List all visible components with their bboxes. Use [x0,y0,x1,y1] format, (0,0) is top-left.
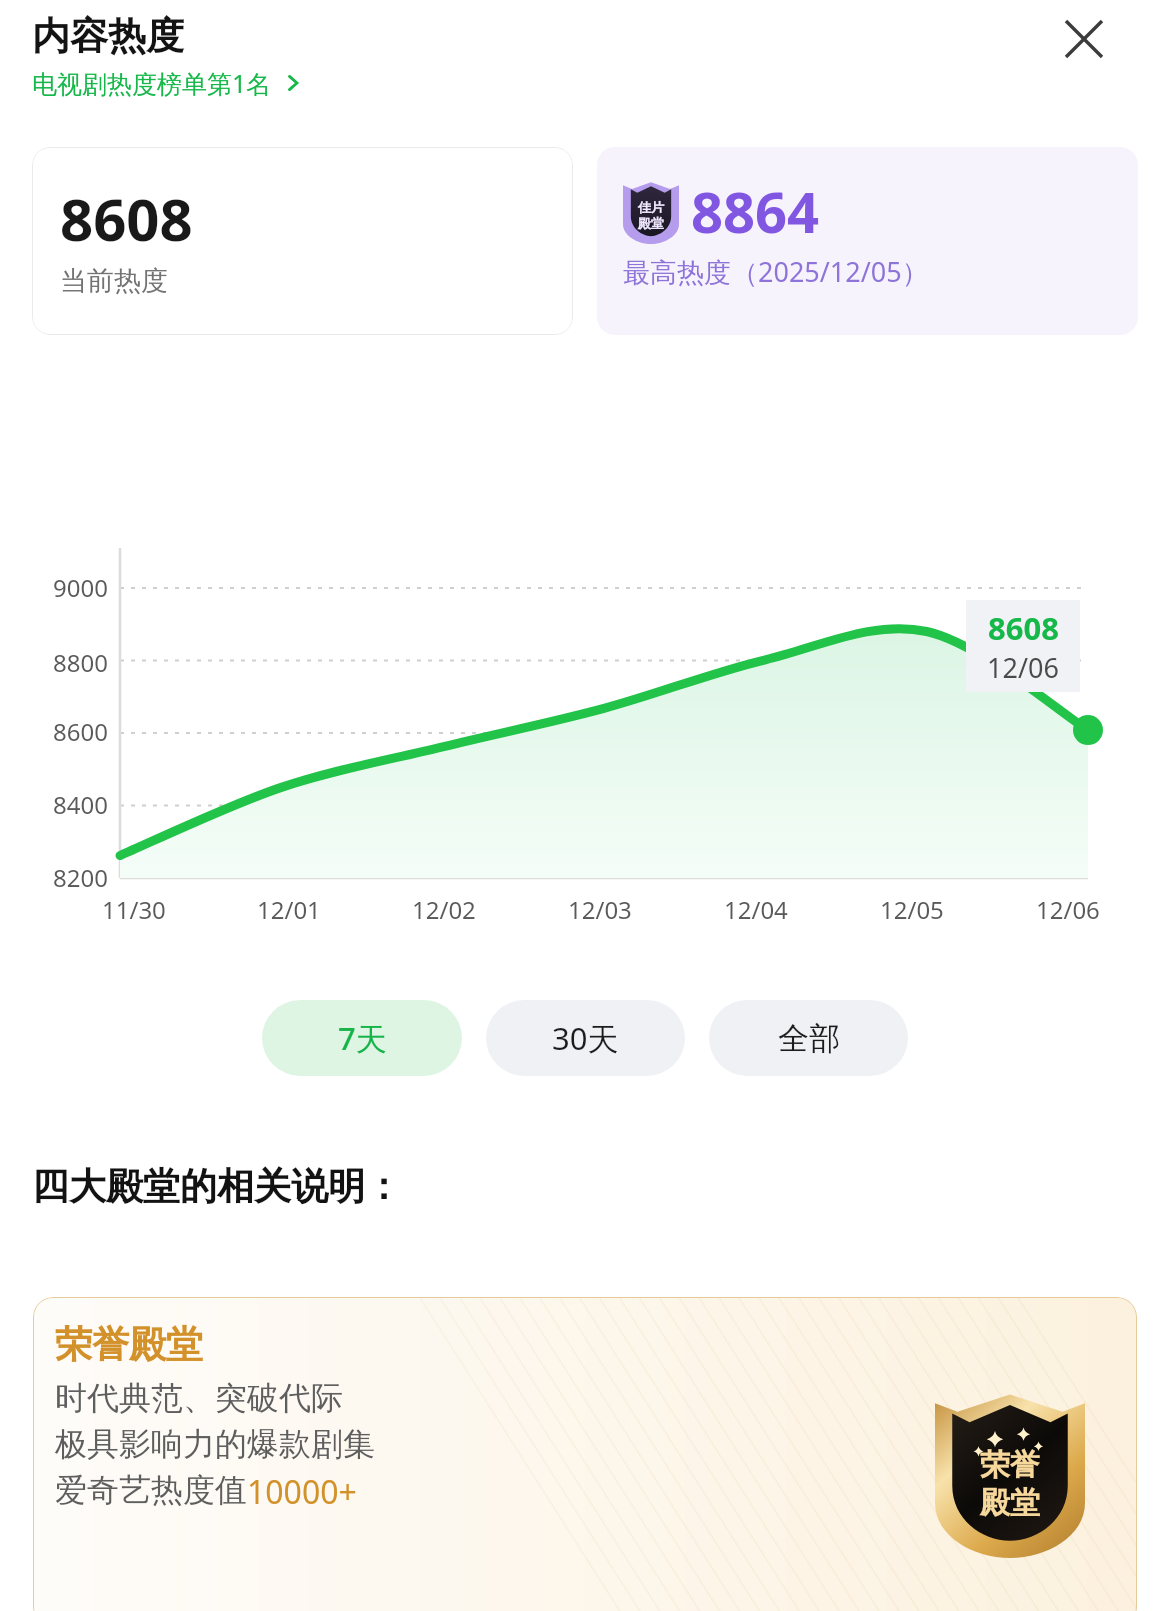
staticText: 8400 [28,788,108,821]
staticText: 佳片 [638,199,664,215]
staticText: 8600 [28,715,108,748]
staticText: 当前热度 [60,264,168,298]
button[interactable]: 7天 [262,1000,462,1076]
staticText: 电视剧热度榜单第1名 [32,66,272,100]
button[interactable]: 全部 [709,1000,908,1076]
staticText: 内容热度 [32,12,184,60]
staticText: 11/30 [102,893,166,926]
staticText: 12/03 [568,893,632,926]
staticText: 8608 [988,607,1059,649]
staticText: 全部 [778,1019,840,1058]
staticText: 12/02 [412,893,476,926]
staticText: 12/04 [724,893,788,926]
staticText: 12/06 [987,649,1059,686]
staticText: 殿堂 [980,1484,1040,1522]
staticText: 8864 [691,173,820,249]
button[interactable]: Close [1053,8,1115,70]
staticText: 8800 [28,646,108,679]
staticText: 12/01 [257,893,321,926]
staticText: 荣誉殿堂 [55,1321,203,1368]
staticText: 10000+ [247,1470,357,1514]
button[interactable]: 电视剧热度榜单第1名 [32,66,304,100]
staticText: 荣誉 [980,1446,1040,1484]
staticText: 四大殿堂的相关说明： [32,1163,402,1210]
staticText: 殿堂 [638,215,664,231]
staticText: 7天 [338,1017,387,1059]
button[interactable]: 荣誉殿堂 [33,1297,1137,1611]
staticText: 爱奇艺热度值 [55,1470,247,1510]
staticText: 8200 [28,861,108,894]
staticText: 9000 [28,571,108,604]
staticText: 30天 [552,1017,619,1059]
button[interactable]: 8608 [32,147,573,335]
staticText: 极具影响力的爆款剧集 [55,1424,375,1464]
staticText: 12/05 [880,893,944,926]
staticText: 最高热度（2025/12/05） [623,253,929,290]
staticText: 8608 [60,179,193,258]
button[interactable]: 30天 [486,1000,685,1076]
button[interactable]: 佳片 [597,147,1138,335]
staticText: 12/06 [1036,893,1100,926]
staticText: 时代典范、突破代际 [55,1378,343,1418]
